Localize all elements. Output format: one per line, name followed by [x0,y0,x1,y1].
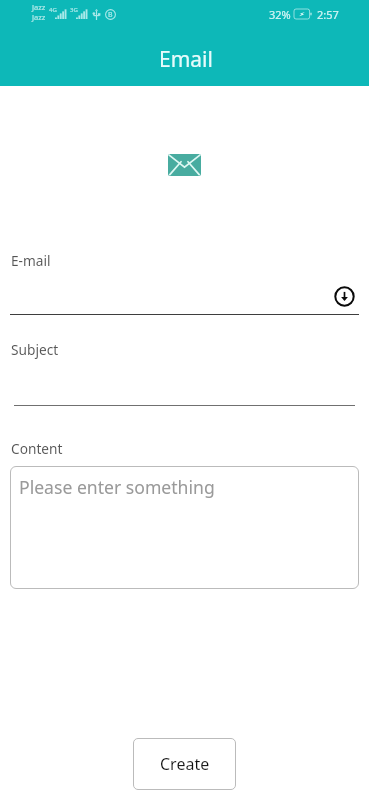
staticText: 3G [70,6,78,14]
staticText: Create [160,753,210,775]
staticText: 4G [49,6,57,14]
staticText: 2:57 [317,7,339,22]
staticText: Subject [11,340,59,359]
button[interactable]: Subject input [14,362,355,406]
staticText: Jazz [32,12,46,22]
button[interactable]: Expand e-mail options [333,285,356,308]
staticText: Please enter something [19,475,215,499]
staticText: Content [11,439,63,458]
button[interactable]: Please enter something [10,466,359,589]
staticText: E-mail [11,251,51,270]
button[interactable]: Create [133,738,236,790]
staticText: Email [159,45,213,74]
staticText: 32% [269,7,291,22]
button[interactable]: E-mail input [10,272,328,316]
other: Email [168,154,201,176]
staticText: Jazz [32,2,46,12]
staticText: B [108,10,113,20]
